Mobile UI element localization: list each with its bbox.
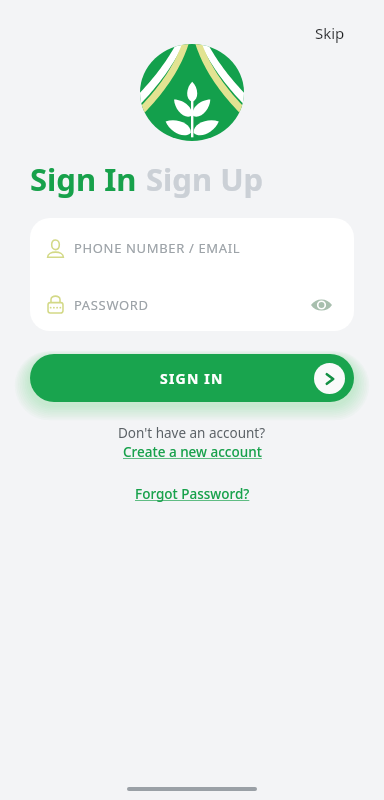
button[interactable]: Sign Up bbox=[146, 158, 264, 200]
button[interactable]: Sign In bbox=[30, 158, 137, 200]
staticText: PASSWORD bbox=[74, 296, 149, 314]
button[interactable]: Skip bbox=[304, 16, 356, 50]
button[interactable]: SIGN IN bbox=[30, 354, 354, 402]
button[interactable]: Show password bbox=[306, 290, 336, 320]
staticText: SIGN IN bbox=[160, 369, 224, 388]
button[interactable]: Create a new account bbox=[123, 443, 262, 461]
staticText: Sign In bbox=[30, 158, 137, 200]
other: Continue bbox=[314, 363, 345, 394]
staticText: PHONE NUMBER / EMAIL bbox=[74, 239, 241, 257]
staticText: Sign Up bbox=[146, 158, 264, 200]
staticText: Don't have an account? bbox=[118, 424, 266, 442]
button[interactable]: Forgot Password? bbox=[135, 485, 250, 503]
staticText: Create a new account bbox=[123, 443, 262, 461]
button[interactable]: PASSWORD bbox=[30, 278, 354, 331]
staticText: Forgot Password? bbox=[135, 485, 250, 503]
staticText: Skip bbox=[315, 23, 345, 43]
button[interactable]: PHONE NUMBER / EMAIL bbox=[30, 218, 354, 278]
